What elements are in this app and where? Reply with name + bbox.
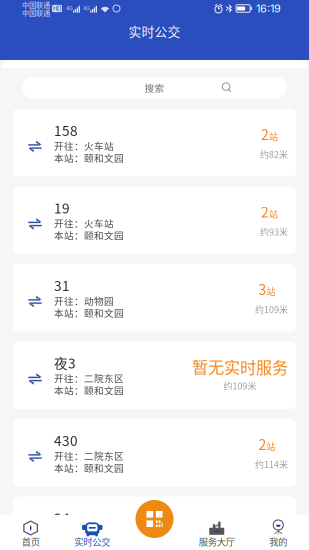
staticText: 4G	[66, 5, 73, 11]
staticText: 2	[261, 201, 269, 221]
staticText: 约114米	[255, 458, 288, 470]
staticText: 开往：火车站	[54, 138, 114, 152]
staticText: 实时公交	[74, 535, 110, 548]
staticText: 24	[54, 508, 70, 527]
staticText: 开往：火车站	[54, 526, 114, 540]
staticText: 3	[258, 279, 266, 299]
staticText: 2	[261, 124, 269, 144]
staticText: 中国联通	[22, 7, 50, 18]
button[interactable]: 首页	[0, 515, 61, 550]
staticText: 本站：颐和文园	[54, 228, 124, 242]
staticText: 开往：动物园	[54, 293, 114, 307]
staticText: 开往：火车站	[54, 216, 114, 230]
button[interactable]: 搜索	[22, 77, 287, 98]
button[interactable]: 430	[13, 419, 296, 486]
button[interactable]: 24	[13, 496, 296, 550]
button[interactable]: 扫一扫	[135, 500, 173, 538]
staticText: 搜索	[144, 80, 164, 94]
staticText: 本站：颐和文园	[54, 150, 124, 164]
staticText: 站	[266, 285, 275, 298]
staticText: 首页	[22, 535, 40, 548]
staticText: 约93米	[260, 225, 288, 238]
staticText: 2	[258, 434, 266, 454]
staticText: 本站：颐和文园	[54, 460, 124, 474]
staticText: 31	[54, 275, 70, 295]
button[interactable]: 实时公交	[61, 515, 123, 550]
staticText: 夜3	[54, 353, 76, 372]
button[interactable]: 158	[13, 109, 296, 176]
staticText: 暂无实时服务	[192, 355, 288, 378]
staticText: 4G	[83, 5, 90, 11]
staticText: 约109米	[255, 303, 288, 315]
staticText: 约82米	[260, 148, 288, 160]
staticText: 站	[266, 440, 275, 453]
staticText: 本站：颐和文园	[54, 305, 124, 319]
staticText: 约109米	[223, 379, 256, 392]
button[interactable]: 服务大厅	[186, 515, 247, 550]
staticText: 开往：二院东区	[54, 448, 124, 462]
staticText: 站	[266, 517, 275, 530]
staticText: 19	[54, 198, 70, 217]
button[interactable]: 19	[13, 186, 296, 254]
staticText: HD	[53, 5, 61, 12]
staticText: 430	[54, 430, 78, 450]
staticText: 站	[269, 207, 278, 220]
staticText: 本站：颐和文园	[54, 383, 124, 397]
staticText: 158	[54, 120, 78, 140]
button[interactable]: 我的	[247, 515, 309, 550]
button[interactable]: 31	[13, 264, 296, 331]
staticText: 服务大厅	[199, 535, 235, 548]
staticText: 16:19	[256, 2, 281, 15]
staticText: 站	[269, 130, 278, 143]
staticText: 开往：二院东区	[54, 371, 124, 385]
button[interactable]: 夜3	[13, 341, 296, 409]
staticText: 实时公交	[128, 22, 180, 40]
staticText: 我的	[269, 535, 287, 548]
staticText: 约120米	[255, 535, 288, 548]
staticText: 中国联通	[22, 0, 50, 10]
staticText: 本站：颐和文园	[54, 538, 124, 550]
